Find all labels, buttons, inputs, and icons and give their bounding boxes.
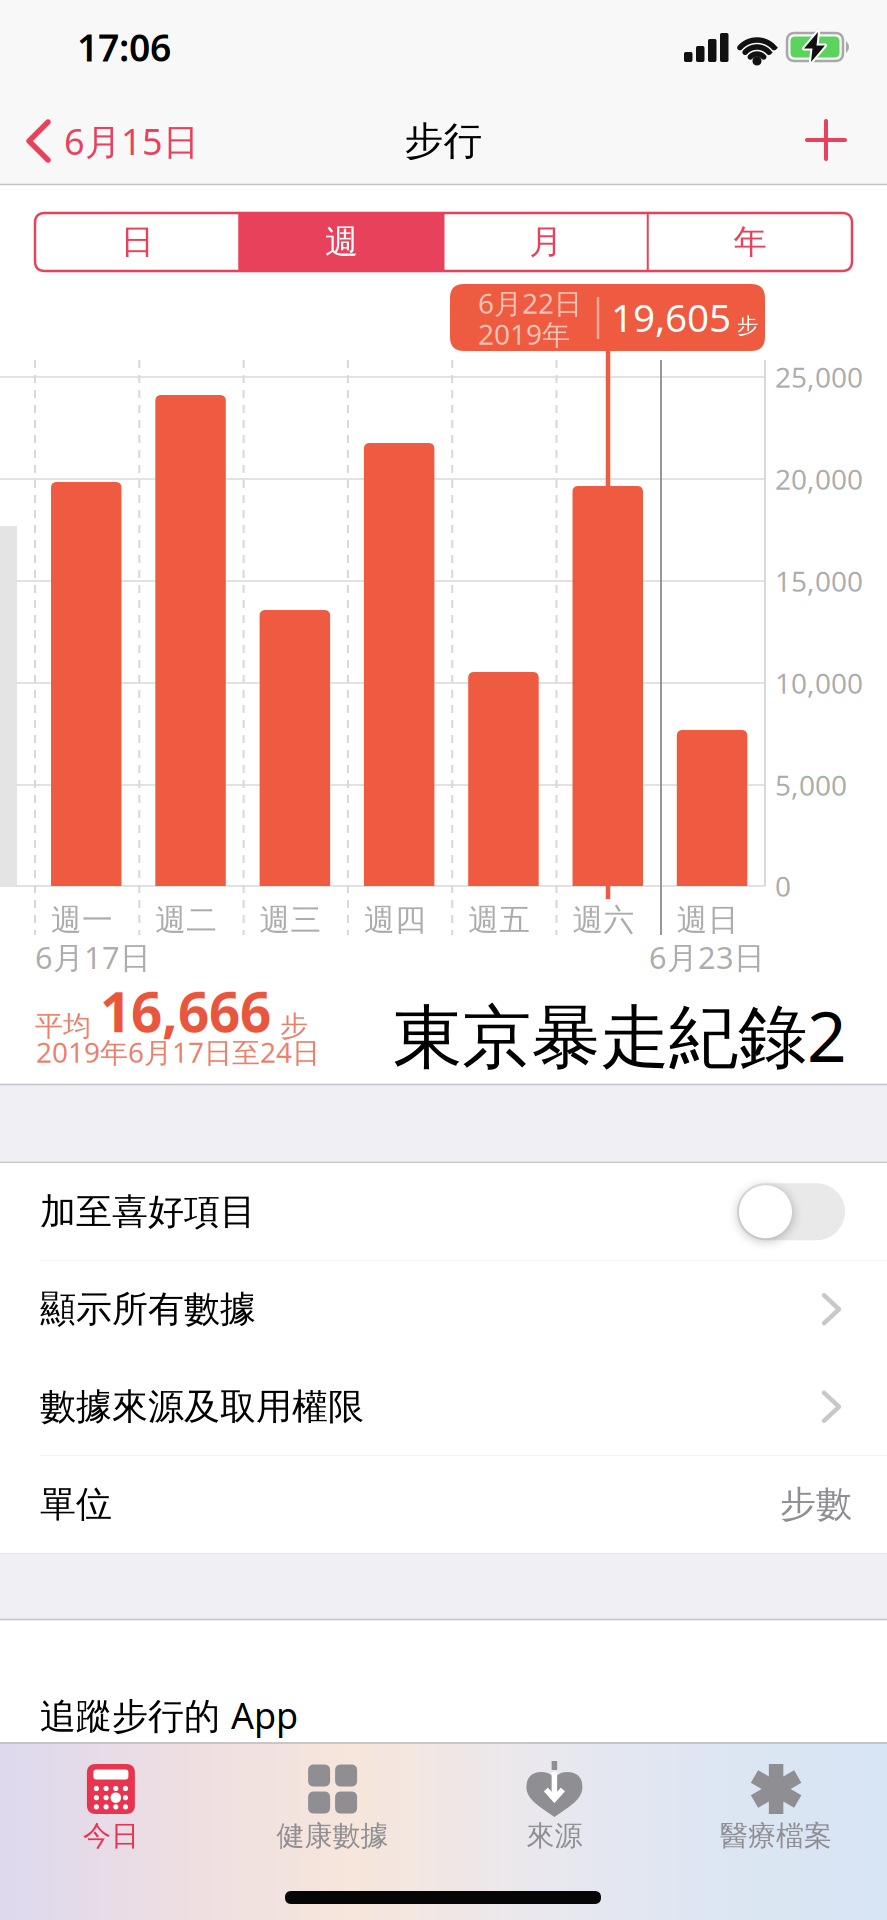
staticText: 週六 [572, 901, 634, 939]
staticText: 步數 [780, 1482, 852, 1526]
staticText: 16,666 [100, 975, 271, 1047]
staticText: 週五 [468, 901, 530, 939]
staticText: 17:06 [77, 22, 171, 72]
staticText: 加至喜好項目 [40, 1190, 256, 1234]
button[interactable]: 單位 [0, 1455, 887, 1553]
staticText: 醫療檔案 [720, 1819, 832, 1853]
staticText: 週四 [364, 901, 426, 939]
staticText: 步 [737, 312, 758, 339]
staticText: 來源 [526, 1819, 582, 1853]
staticText: 20,000 [775, 460, 863, 498]
staticText: 東京暴走紀錄2 [393, 989, 847, 1081]
staticText: 6月23日 [649, 937, 765, 977]
staticText: 25,000 [775, 358, 863, 396]
staticText: 週二 [155, 901, 217, 939]
staticText: 今日 [83, 1819, 139, 1853]
button[interactable]: 週 [239, 213, 443, 271]
button[interactable]: 6月15日 [26, 117, 326, 165]
staticText: 6月15日 [64, 117, 199, 165]
staticText: 0 [775, 867, 791, 905]
button[interactable] [807, 121, 845, 159]
staticText: 5,000 [775, 766, 847, 804]
staticText: 單位 [40, 1482, 112, 1526]
staticText: 平均 [35, 1009, 91, 1043]
staticText: 追蹤步行的 App [40, 1691, 298, 1739]
staticText: 週三 [260, 901, 322, 939]
staticText: 健康數據 [277, 1819, 389, 1853]
staticText: 月 [529, 221, 562, 262]
staticText: 15,000 [775, 562, 863, 600]
button[interactable]: 今日 [1, 1745, 221, 1865]
staticText: 顯示所有數據 [40, 1287, 256, 1331]
button[interactable]: 日 [35, 213, 239, 271]
staticText: 步行 [404, 117, 482, 165]
button[interactable]: 來源 [444, 1745, 664, 1865]
staticText: 10,000 [775, 664, 863, 702]
button[interactable]: 醫療檔案 [666, 1745, 886, 1865]
button[interactable]: 健康數據 [223, 1745, 443, 1865]
staticText: 2019年6月17日至24日 [36, 1033, 320, 1071]
staticText: 6月22日 [478, 284, 582, 322]
button[interactable]: 加至喜好項目 [0, 1163, 887, 1260]
staticText: 週 [325, 221, 358, 262]
button[interactable]: 年 [648, 213, 852, 271]
staticText: 19,605 [611, 291, 731, 343]
staticText: 年 [733, 221, 766, 262]
staticText: 數據來源及取用權限 [40, 1385, 364, 1429]
button[interactable]: 月 [443, 213, 648, 271]
button[interactable]: 顯示所有數據 [0, 1260, 887, 1358]
staticText: 週一 [51, 901, 113, 939]
staticText: 6月17日 [35, 937, 151, 977]
button[interactable]: 數據來源及取用權限 [0, 1358, 887, 1455]
staticText: 步 [280, 1009, 308, 1043]
staticText: 2019年 [478, 315, 570, 353]
staticText: 日 [121, 221, 154, 262]
staticText: 週日 [677, 901, 739, 939]
